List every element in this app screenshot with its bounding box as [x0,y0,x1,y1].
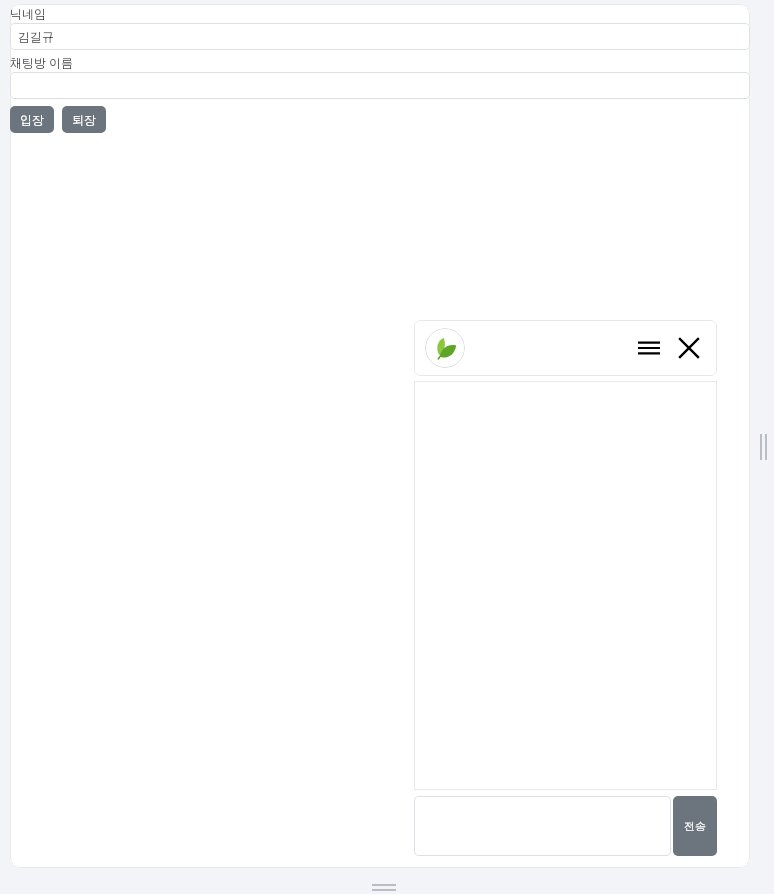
button[interactable]: Close [672,331,706,365]
staticText: 채팅방 이름 [10,54,74,70]
button[interactable]: 입장 [10,106,54,133]
staticText: 김길규 [18,29,54,44]
staticText: 닉네임 [10,6,46,21]
button[interactable]: 퇴장 [62,106,106,133]
button[interactable] [10,72,750,99]
button[interactable]: Menu [632,331,666,365]
staticText: 입장 [20,112,44,127]
button[interactable]: Chat logo [425,328,465,368]
staticText: 퇴장 [72,112,96,127]
button[interactable]: 김길규 [10,23,750,50]
staticText: 전송 [684,819,706,833]
button[interactable]: 전송 [673,796,717,856]
button[interactable] [414,796,671,856]
